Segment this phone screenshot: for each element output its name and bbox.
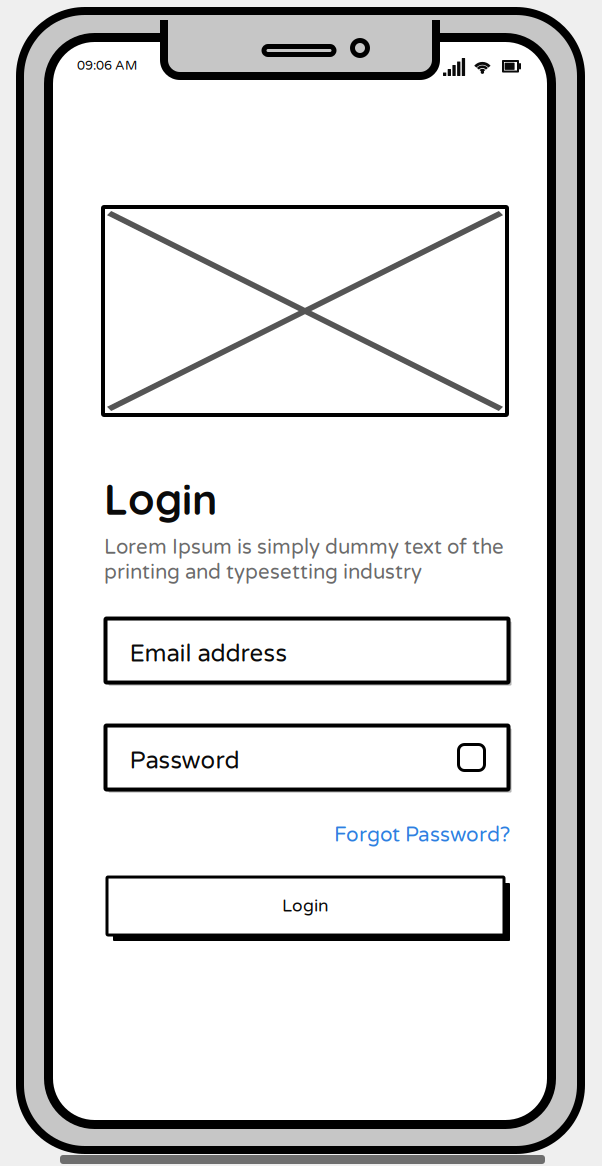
button[interactable]: Login bbox=[104, 874, 507, 938]
staticText: 09:06 AM bbox=[77, 58, 137, 73]
staticText: Email address bbox=[129, 639, 287, 668]
staticText: Forgot Password? bbox=[334, 823, 510, 847]
button[interactable]: Password bbox=[104, 724, 510, 791]
staticText: Lorem Ipsum is simply dummy text of the bbox=[104, 535, 504, 560]
staticText: Password bbox=[129, 746, 239, 775]
staticText: Login bbox=[104, 472, 217, 525]
button[interactable]: Email address bbox=[104, 617, 510, 684]
button[interactable]: Forgot Password? bbox=[322, 822, 522, 848]
staticText: printing and typesetting industry bbox=[104, 560, 422, 585]
staticText: Login bbox=[282, 896, 329, 916]
